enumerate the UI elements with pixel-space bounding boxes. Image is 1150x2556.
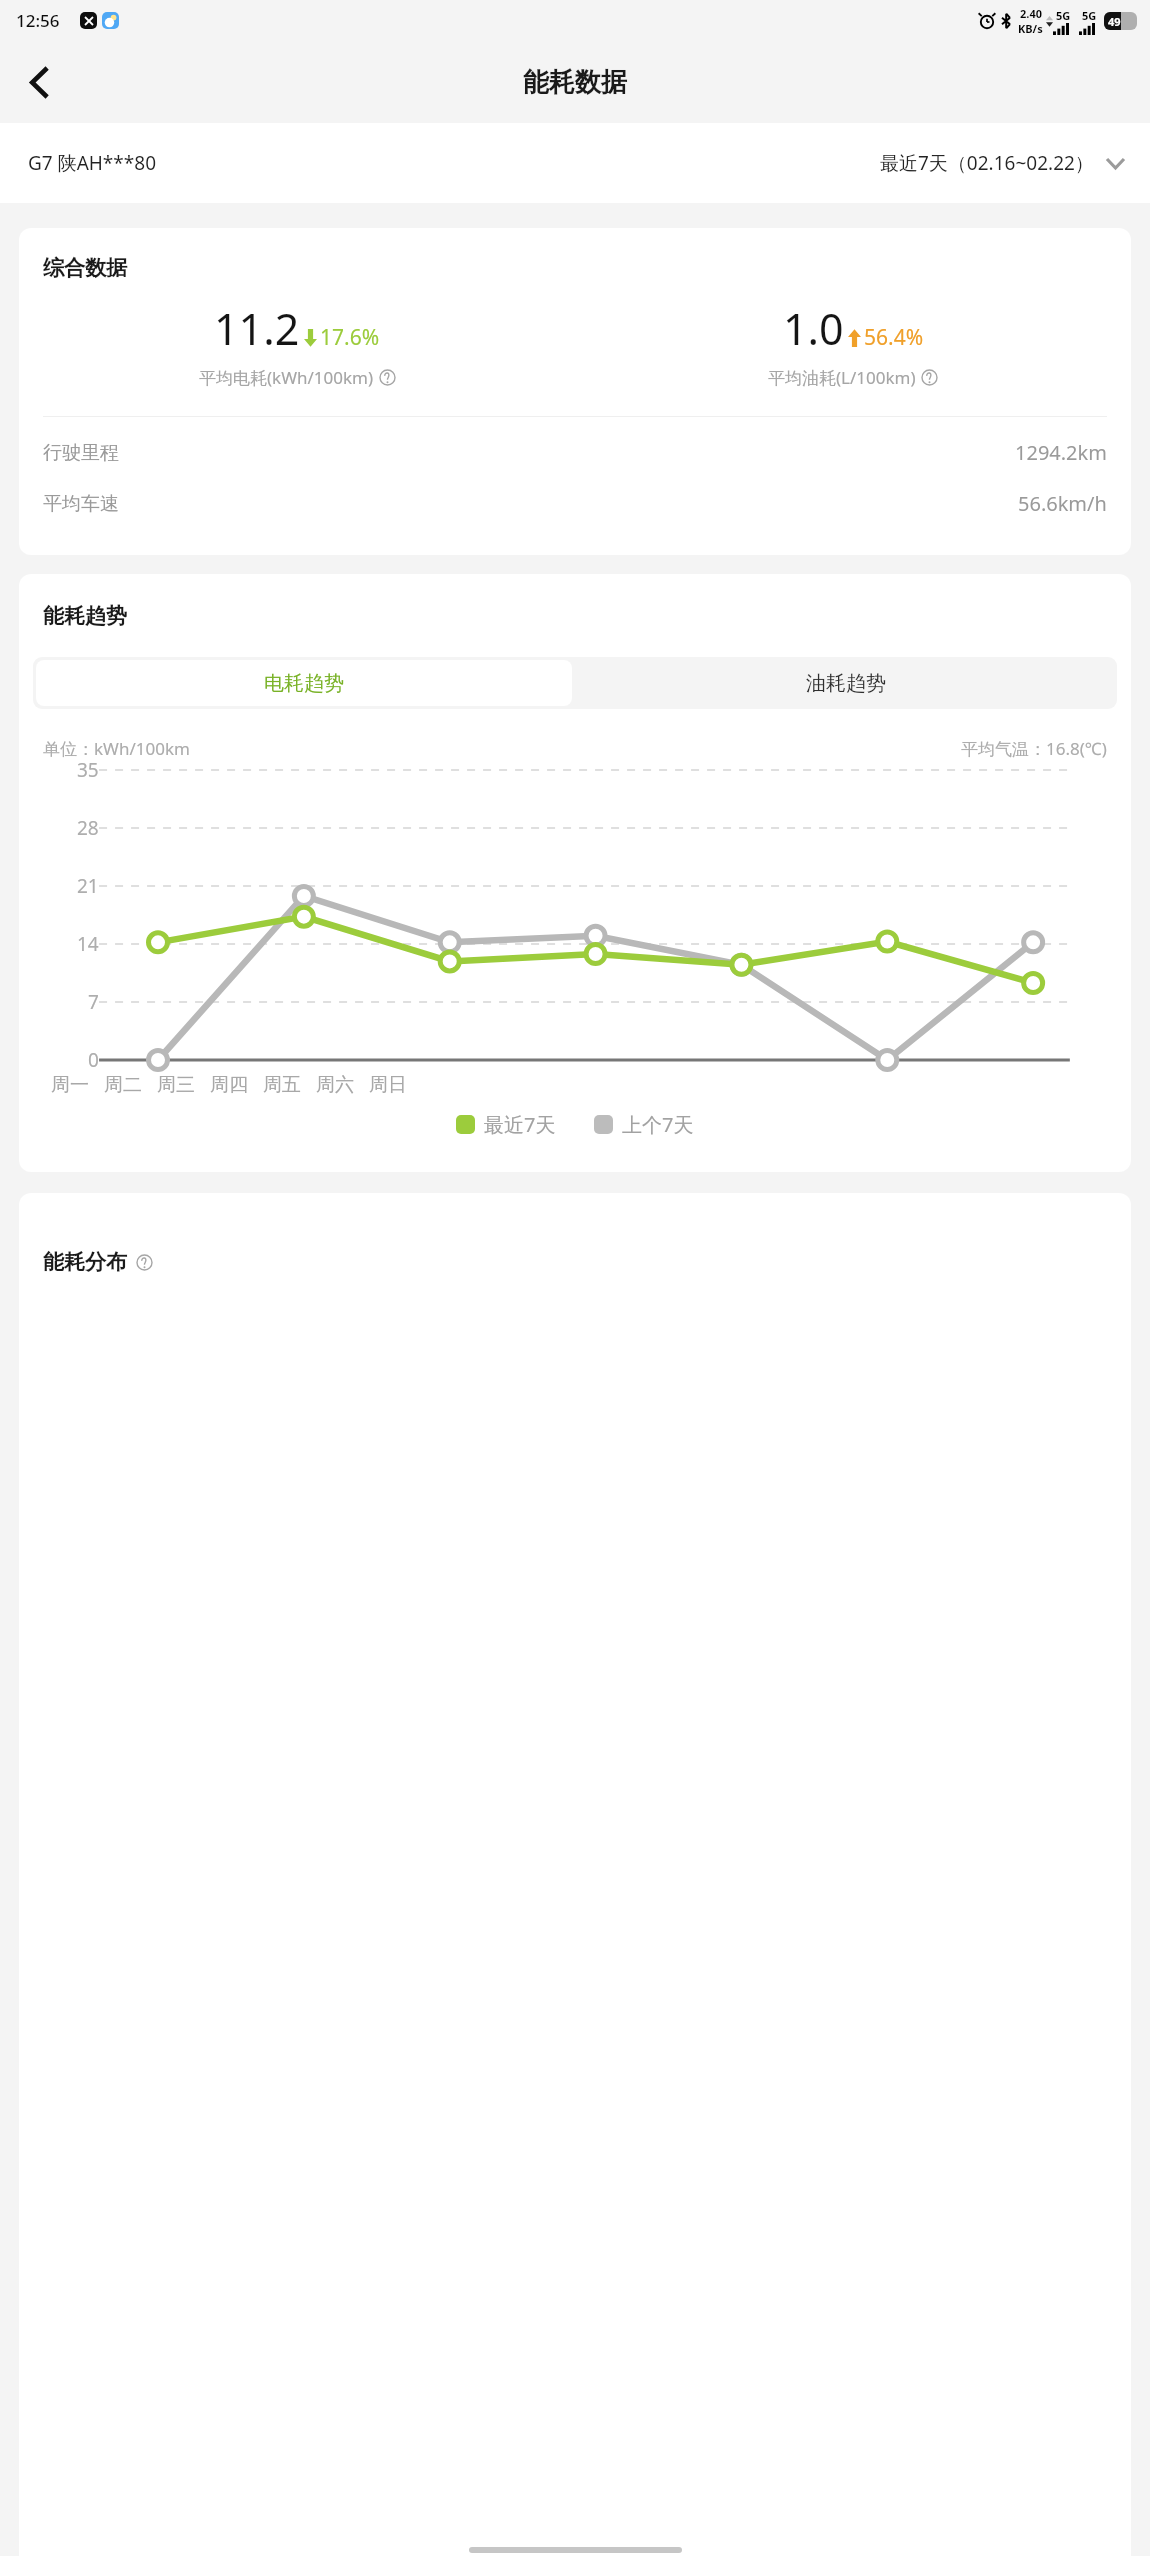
staticText: 电耗趋势 [264,671,344,696]
button[interactable]: 说明 [136,1254,153,1271]
staticText: 7 [88,989,99,1015]
staticText: 周一 [51,1073,89,1097]
staticText: 49 [1108,14,1121,29]
staticText: 12:56 [16,9,60,32]
button[interactable]: 上个7天 [594,1111,694,1138]
button[interactable]: 最近7天 [456,1111,556,1138]
staticText: 21 [77,873,99,899]
staticText: 最近7天 [484,1111,556,1138]
staticText: 综合数据 [43,255,127,281]
staticText: 周日 [369,1073,407,1097]
staticText: 单位：kWh/100km [43,737,190,760]
staticText: 上个7天 [622,1111,694,1138]
staticText: 2.40 [1020,6,1042,21]
staticText: 56.6km/h [1018,490,1107,517]
staticText: 平均气温：16.8(℃) [961,737,1107,760]
staticText: 35 [77,757,99,783]
staticText: 最近7天（02.16~02.22） [880,150,1094,176]
button[interactable]: 最近7天（02.16~02.22） [880,150,1125,176]
button[interactable]: 油耗趋势 [575,657,1117,709]
staticText: 0 [88,1047,99,1073]
staticText: 11.2 [214,299,300,358]
staticText: 1.0 [783,299,844,358]
button[interactable]: 说明 [921,369,938,386]
staticText: 能耗分布 [43,1249,127,1275]
staticText: G7 陕AH***80 [28,150,157,176]
staticText: 油耗趋势 [806,671,886,696]
button[interactable]: Back [10,53,68,111]
button[interactable]: 电耗趋势 [36,660,572,706]
staticText: 周五 [263,1073,301,1097]
staticText: 5G [1056,8,1071,23]
staticText: 平均油耗(L/100km) [768,366,916,389]
staticText: 周六 [316,1073,354,1097]
staticText: 周三 [157,1073,195,1097]
button[interactable]: 说明 [379,369,396,386]
staticText: 能耗趋势 [43,603,127,629]
staticText: 周二 [104,1073,142,1097]
staticText: 5G [1082,8,1097,23]
staticText: 平均车速 [43,492,119,516]
staticText: 56.4% [864,323,924,352]
staticText: 14 [77,931,99,957]
staticText: 28 [77,815,99,841]
staticText: 能耗数据 [523,66,627,99]
staticText: 行驶里程 [43,441,119,465]
staticText: 17.6% [320,323,380,352]
staticText: 1294.2km [1015,439,1107,466]
staticText: 周四 [210,1073,248,1097]
staticText: 平均电耗(kWh/100km) [199,366,374,389]
staticText: KB/s [1018,21,1043,36]
